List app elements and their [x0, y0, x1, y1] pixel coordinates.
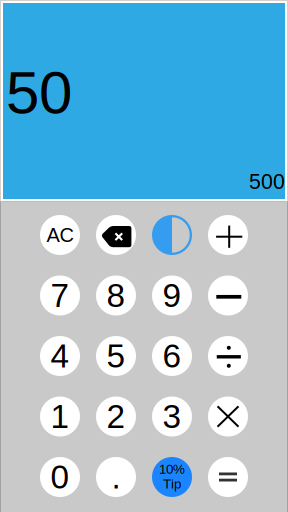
- staticText: AC: [46, 224, 73, 246]
- button[interactable]: Add: [208, 215, 248, 255]
- button[interactable]: Multiply: [208, 396, 248, 436]
- button[interactable]: 7: [40, 275, 80, 315]
- button[interactable]: 4: [40, 336, 80, 376]
- staticText: 0: [50, 458, 69, 496]
- staticText: 2: [106, 398, 125, 435]
- button[interactable]: 5: [96, 336, 136, 376]
- button[interactable]: 3: [152, 396, 192, 436]
- staticText: 1: [50, 398, 69, 435]
- button[interactable]: 8: [96, 275, 136, 315]
- button[interactable]: 10 percent tip: [152, 457, 192, 497]
- staticText: 8: [106, 277, 125, 314]
- button[interactable]: Divide: [208, 336, 248, 376]
- staticText: 5: [106, 337, 125, 375]
- staticText: 50: [6, 59, 72, 126]
- staticText: 9: [162, 277, 181, 314]
- button[interactable]: 9: [152, 275, 192, 315]
- button[interactable]: 6: [152, 336, 192, 376]
- staticText: .: [111, 458, 120, 496]
- staticText: 10%: [159, 462, 185, 476]
- button[interactable]: 2: [96, 396, 136, 436]
- staticText: 7: [50, 277, 69, 314]
- staticText: 500: [249, 170, 285, 194]
- button[interactable]: Toggle appearance: [152, 215, 192, 255]
- button[interactable]: All clear: [40, 215, 80, 255]
- button[interactable]: Delete: [96, 215, 136, 255]
- staticText: 4: [50, 337, 69, 375]
- button[interactable]: Equals: [208, 457, 248, 497]
- staticText: Tip: [163, 476, 181, 491]
- button[interactable]: Decimal point: [96, 457, 136, 497]
- button[interactable]: Subtract: [208, 275, 248, 315]
- staticText: 3: [162, 398, 181, 435]
- button[interactable]: 1: [40, 396, 80, 436]
- staticText: 6: [162, 337, 181, 375]
- button[interactable]: 0: [40, 457, 80, 497]
